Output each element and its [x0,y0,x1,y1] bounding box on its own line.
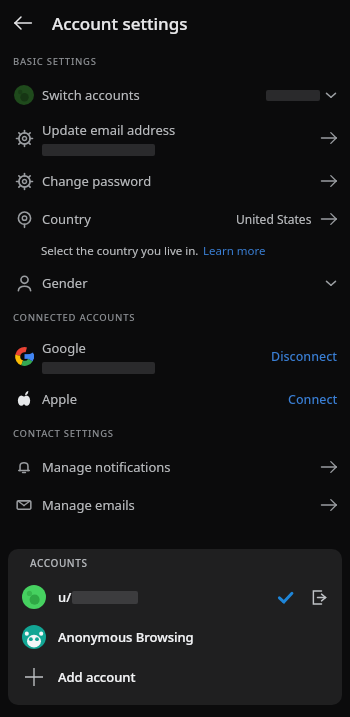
staticText: Learn more [203,243,266,259]
staticText: Account settings [52,12,188,35]
staticText: BASIC SETTINGS [13,55,97,68]
staticText: Update email address [42,121,176,139]
staticText: Apple [42,390,77,408]
staticText: ACCOUNTS [30,556,88,570]
staticText: Google [42,339,86,357]
button[interactable]: Country [0,200,350,238]
staticText: Manage notifications [42,458,171,476]
button[interactable]: Log out [308,586,330,608]
staticText: Change password [42,172,152,190]
button[interactable]: Change password [0,162,350,200]
button[interactable]: Manage emails [0,486,350,524]
staticText: CONNECTED ACCOUNTS [13,311,136,324]
staticText: CONTACT SETTINGS [13,427,114,440]
button[interactable]: Back [0,0,46,46]
staticText: u/ [58,588,72,606]
staticText: Gender [42,274,88,292]
staticText: Manage emails [42,496,135,514]
button[interactable]: Add account [8,657,342,697]
staticText: United States [236,211,312,227]
staticText: Select the country you live in. [41,243,199,259]
button[interactable]: Anonymous Browsing [8,617,342,657]
staticText: Add account [58,668,136,686]
staticText: Country [42,210,91,228]
staticText: Switch accounts [42,86,140,104]
button[interactable]: Learn more [203,243,266,259]
button[interactable]: Update email address [0,114,350,162]
button[interactable]: u/ [8,577,342,617]
button[interactable]: Switch accounts [0,76,350,114]
button[interactable]: Apple [0,380,350,418]
button[interactable]: Gender [0,264,350,302]
staticText: Connect [288,391,338,408]
staticText: Anonymous Browsing [58,628,194,646]
button[interactable]: Manage notifications [0,448,350,486]
button[interactable]: Google [0,332,350,380]
staticText: Disconnect [271,348,338,365]
